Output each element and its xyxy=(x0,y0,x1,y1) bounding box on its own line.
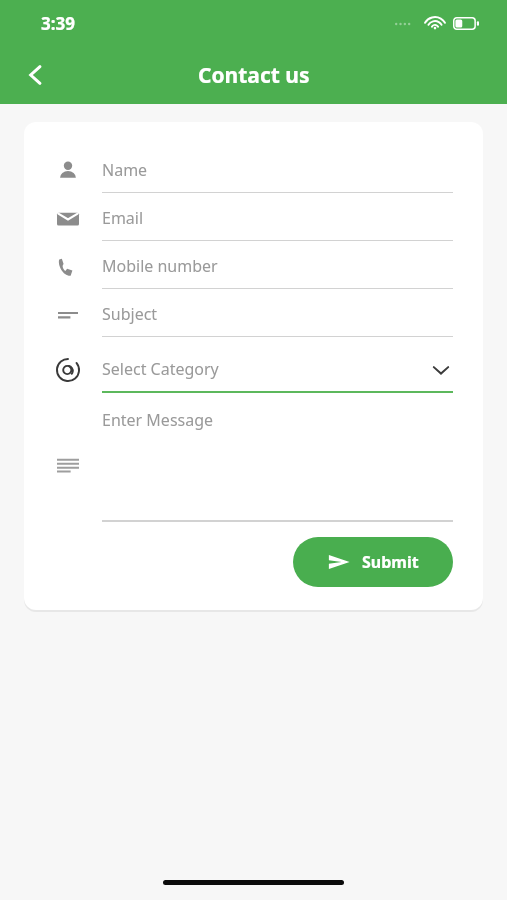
button[interactable]: Submit xyxy=(293,537,453,587)
button[interactable]: Name xyxy=(24,148,483,196)
staticText: 3:39 xyxy=(41,12,75,35)
staticText: Enter Message xyxy=(102,409,214,431)
button[interactable]: Mobile number xyxy=(24,244,483,292)
button[interactable]: Enter Message xyxy=(24,400,483,524)
staticText: Contact us xyxy=(198,61,310,90)
staticText: Submit xyxy=(362,551,419,573)
staticText: Email xyxy=(102,207,144,229)
button[interactable]: Subject xyxy=(24,292,483,340)
button[interactable]: Back xyxy=(12,51,60,99)
button[interactable]: Email xyxy=(24,196,483,244)
staticText: Name xyxy=(102,159,148,181)
staticText: Mobile number xyxy=(102,255,218,277)
staticText: Subject xyxy=(102,303,158,325)
staticText: Select Category xyxy=(102,358,219,380)
button[interactable]: Select Category xyxy=(24,348,483,396)
